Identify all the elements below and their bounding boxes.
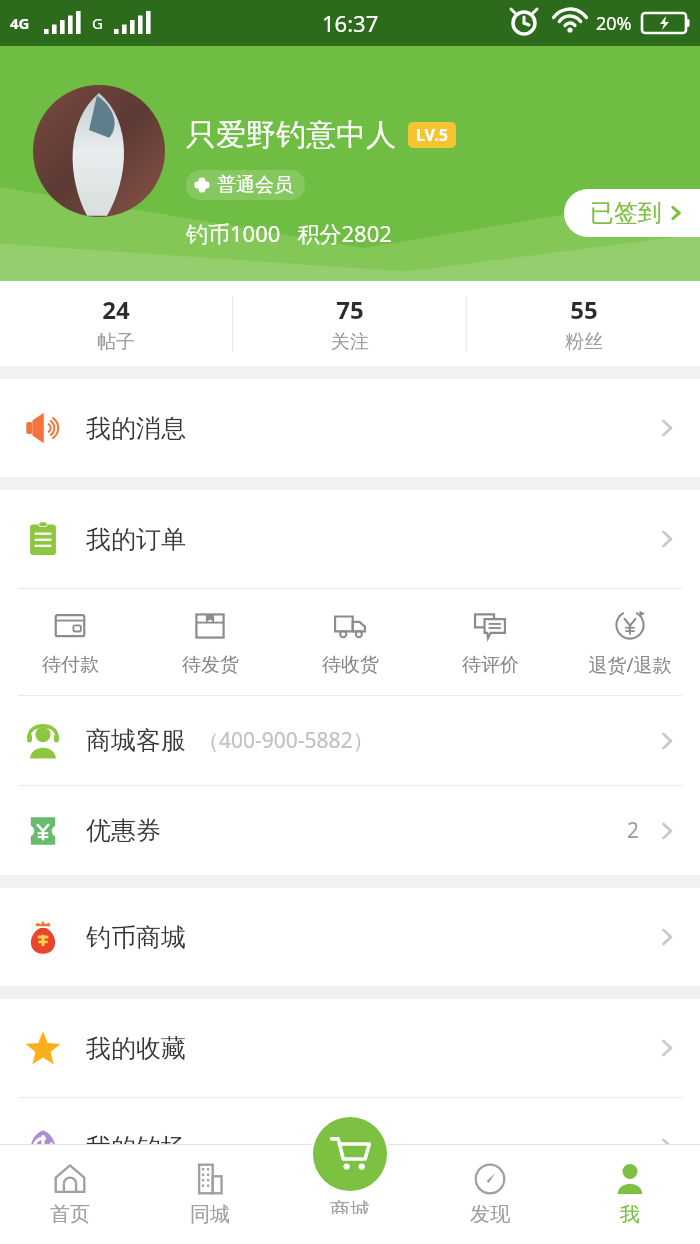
staticText: 待付款 — [42, 653, 99, 677]
staticText: 优惠券 — [86, 815, 161, 846]
staticText: 粉丝 — [565, 330, 603, 354]
staticText: 55 — [570, 293, 598, 326]
button[interactable]: 我的收藏 — [0, 999, 700, 1097]
button[interactable]: 优惠券 — [0, 786, 700, 875]
button[interactable]: 我 — [560, 1144, 700, 1244]
staticText: 商城客服 — [86, 725, 186, 756]
staticText: 2 — [627, 816, 640, 845]
staticText: 钓币1000 积分2802 — [186, 218, 392, 248]
button[interactable]: 钓币商城 — [0, 888, 700, 986]
staticText: 已签到 — [590, 198, 662, 228]
staticText: 只爱野钓意中人 — [186, 116, 396, 154]
staticText: 我的收藏 — [86, 1033, 186, 1064]
button[interactable]: 普通会员 — [186, 170, 305, 200]
staticText: 20% — [596, 11, 632, 36]
button[interactable]: 同城 — [140, 1144, 280, 1244]
button[interactable]: 待评价 — [420, 589, 560, 695]
staticText: 关注 — [331, 330, 369, 354]
staticText: 帖子 — [97, 330, 135, 354]
staticText: 待发货 — [182, 653, 239, 677]
staticText: 我 — [620, 1202, 640, 1227]
button[interactable]: 已签到 — [564, 189, 700, 237]
button[interactable]: 我的钓场 — [0, 1098, 700, 1196]
staticText: 我的订单 — [86, 524, 186, 555]
button[interactable]: 待收货 — [280, 589, 420, 695]
button[interactable]: 我的订单 — [0, 490, 700, 588]
staticText: 75 — [336, 293, 364, 326]
staticText: 待评价 — [462, 653, 519, 677]
button[interactable]: 待付款 — [0, 589, 140, 695]
staticText: 24 — [102, 293, 130, 326]
staticText: 普通会员 — [217, 173, 293, 197]
staticText: 待收货 — [322, 653, 379, 677]
button[interactable]: 商城 — [310, 1114, 390, 1214]
staticText: 4G — [10, 13, 30, 33]
button[interactable]: 商城客服 — [0, 696, 700, 785]
staticText: 钓币商城 — [86, 922, 186, 953]
button[interactable]: 55 — [467, 281, 700, 366]
staticText: 我的消息 — [86, 413, 186, 444]
staticText: 发现 — [470, 1202, 510, 1227]
staticText: LV.5 — [416, 124, 448, 146]
staticText: 商城 — [330, 1198, 370, 1214]
staticText: G — [92, 13, 103, 33]
staticText: 同城 — [190, 1202, 230, 1227]
button[interactable]: 首页 — [0, 1144, 140, 1244]
staticText: 16:37 — [322, 8, 379, 38]
staticText: 我的钓场 — [86, 1132, 186, 1163]
button[interactable]: 待发货 — [140, 589, 280, 695]
button[interactable]: 24 — [0, 281, 232, 366]
staticText: 首页 — [50, 1202, 90, 1227]
button[interactable]: 退货/退款 — [560, 589, 700, 695]
button[interactable]: 75 — [233, 281, 466, 366]
button[interactable]: 我的消息 — [0, 379, 700, 477]
button[interactable]: 发现 — [420, 1144, 560, 1244]
button[interactable]: 头像 — [33, 85, 165, 217]
staticText: （400-900-5882） — [198, 726, 374, 755]
staticText: 退货/退款 — [588, 652, 672, 678]
